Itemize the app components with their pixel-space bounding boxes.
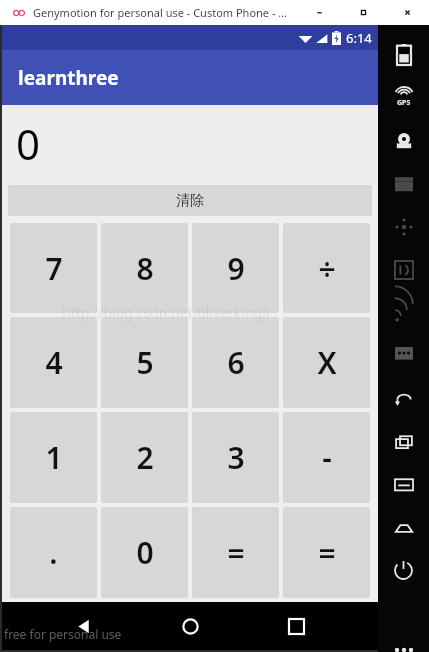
button[interactable]: 9 [192,223,279,313]
button[interactable]: Back [378,377,429,420]
staticText: - [322,437,332,478]
button[interactable]: X [283,317,370,408]
button[interactable]: = [192,507,279,598]
button[interactable]: Minimize [297,0,341,25]
staticText: 5 [136,342,154,383]
button[interactable]: GPS [378,76,429,119]
button[interactable]: Home [166,602,214,650]
button[interactable]: 5 [101,317,188,408]
staticText: GPS [397,98,411,108]
button[interactable]: 7 [10,223,97,313]
staticText: 9 [227,248,245,289]
staticText: 0 [136,532,154,573]
button[interactable]: - [283,412,370,503]
staticText: 6 [227,342,245,383]
staticText: learnthree [18,65,119,91]
button[interactable]: 4 [10,317,97,408]
button[interactable]: . [10,507,97,598]
button[interactable]: Network [378,291,429,334]
staticText: 0 [16,115,41,172]
button[interactable]: Maximize [341,0,385,25]
button[interactable]: Messages [378,334,429,377]
button[interactable]: Move [378,205,429,248]
staticText: free for personal use [4,626,122,642]
button[interactable]: Power [378,549,429,592]
button[interactable]: = [283,507,370,598]
button[interactable]: Menu [378,463,429,506]
staticText: . [49,532,58,573]
staticText: 6:14 [346,29,372,47]
button[interactable]: 3 [192,412,279,503]
button[interactable]: Battery [378,33,429,76]
staticText: 8 [136,248,154,289]
button[interactable]: Close [385,0,429,25]
button[interactable]: 2 [101,412,188,503]
staticText: Genymotion for personal use - Custom Pho… [33,5,288,20]
button[interactable]: Identifiers [378,248,429,291]
staticText: 4 [45,342,63,383]
button[interactable]: ÷ [283,223,370,313]
staticText: 1 [45,437,63,478]
button[interactable]: 6 [192,317,279,408]
button[interactable]: Recent apps [378,420,429,463]
button[interactable]: Camera [378,119,429,162]
staticText: http://blog.csdn.net/0liverkingli [62,303,270,322]
button[interactable]: Back [60,602,108,650]
button[interactable]: Recent apps [272,602,320,650]
staticText: X [317,342,337,383]
button[interactable]: Video [378,162,429,205]
staticText: = [227,532,245,573]
button[interactable]: 清除 [8,185,372,216]
button[interactable]: More [378,628,429,652]
staticText: 3 [227,437,245,478]
staticText: 清除 [176,192,204,210]
staticText: 2 [136,437,154,478]
button[interactable]: 8 [101,223,188,313]
staticText: ÷ [318,248,336,289]
staticText: 7 [45,248,63,289]
button[interactable]: 1 [10,412,97,503]
staticText: = [318,532,336,573]
button[interactable]: Home [378,506,429,549]
button[interactable]: 0 [101,507,188,598]
